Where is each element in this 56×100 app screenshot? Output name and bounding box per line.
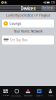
staticText: On Demand [11,94,22,97]
staticText: Guide [3,94,9,97]
staticText: Search [36,94,42,97]
button[interactable]: Set Top Box [2,35,54,44]
staticText: Currently Selected TV Playout [6,14,50,17]
staticText: Devices [20,6,35,11]
button[interactable]: On Demand [11,86,22,100]
staticText: 9:41 [51,1,55,4]
staticText: Your Home Network [14,30,42,33]
button[interactable]: More [45,86,56,100]
staticText: More [48,94,53,97]
staticText: Recorded [24,94,32,97]
staticText: Refresh [43,6,54,10]
button[interactable]: Search [34,86,45,100]
staticText: Set Top Box [10,38,28,42]
button[interactable]: Recorded [22,86,34,100]
button[interactable]: Guide [0,86,11,100]
button[interactable]: Refresh [42,6,55,10]
staticText: Lounge [9,21,21,25]
button[interactable]: Lounge [2,19,54,27]
